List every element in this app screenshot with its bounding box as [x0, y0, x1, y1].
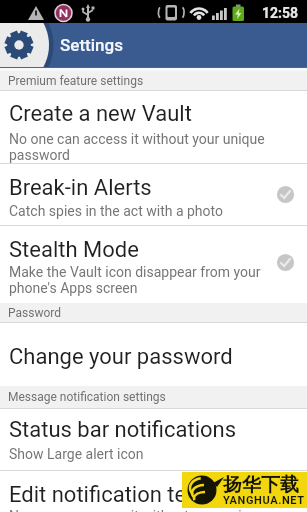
button[interactable]: 扬华下载	[182, 472, 307, 508]
staticText: YANGHUA.NET	[223, 494, 305, 507]
staticText: phone's Apps screen	[9, 280, 138, 296]
button[interactable]: Settings	[0, 23, 307, 67]
staticText: Settings	[60, 35, 123, 55]
staticText: No one can access it without your unique	[9, 508, 265, 512]
staticText: Create a new Vault	[9, 101, 192, 127]
staticText: 扬华下载	[223, 473, 299, 497]
staticText: Password	[8, 306, 62, 320]
staticText: No one can access it without your unique	[9, 131, 265, 147]
staticText: Edit notification text	[9, 482, 205, 508]
button[interactable]: Create a new Vault	[0, 91, 307, 163]
button[interactable]: Stealth Mode	[0, 226, 307, 303]
staticText: 12:58	[262, 5, 299, 21]
staticText: Make the Vault icon disappear from your	[9, 264, 261, 280]
staticText: Catch spies in the act with a photo	[9, 203, 223, 219]
staticText: Message notification settings	[8, 390, 166, 404]
staticText: Stealth Mode	[9, 237, 139, 263]
button[interactable]: Break-in Alerts	[0, 164, 307, 225]
staticText: Premium feature settings	[8, 74, 144, 88]
staticText: password	[9, 147, 70, 163]
button[interactable]: Status bar notifications	[0, 409, 307, 470]
staticText: Change your password	[9, 344, 233, 370]
button[interactable]: Edit notification text	[0, 471, 307, 512]
staticText: Status bar notifications	[9, 417, 237, 443]
staticText: Break-in Alerts	[9, 175, 152, 201]
button[interactable]: Change your password	[0, 323, 307, 386]
staticText: Show Large alert icon	[9, 446, 144, 462]
